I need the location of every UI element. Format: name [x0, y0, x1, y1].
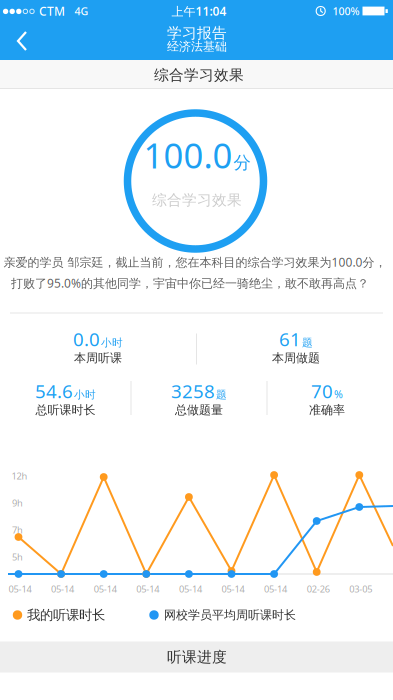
staticText: CTM	[39, 3, 65, 19]
staticText: 打败了95.0%的其他同学，宇宙中你已经一骑绝尘，敢不敢再高点？	[11, 275, 369, 291]
staticText: 5h	[12, 551, 23, 563]
staticText: 9h	[12, 497, 23, 509]
staticText: 分	[233, 152, 250, 173]
staticText: 题	[216, 388, 227, 401]
staticText: 05-14	[264, 583, 287, 595]
staticText: 小时	[101, 336, 123, 349]
staticText: 54.6	[35, 379, 73, 403]
staticText: 经济法基础	[167, 39, 227, 54]
staticText: 学习报告	[167, 24, 227, 42]
staticText: 我的听课时长	[27, 607, 105, 623]
staticText: 05-14	[136, 583, 159, 595]
staticText: 听课进度	[167, 648, 227, 666]
staticText: 05-14	[51, 583, 74, 595]
staticText: 70	[311, 379, 333, 403]
staticText: 100%	[332, 4, 359, 18]
staticText: 02-26	[307, 583, 330, 595]
staticText: 12h	[11, 470, 27, 482]
staticText: 7h	[12, 524, 23, 536]
staticText: %	[334, 387, 343, 401]
staticText: 综合学习效果	[152, 191, 242, 209]
staticText: 总听课时长	[35, 403, 95, 417]
staticText: 综合学习效果	[154, 66, 244, 84]
staticText: 05-14	[8, 583, 31, 595]
staticText: 4G	[74, 4, 88, 18]
staticText: 3258	[171, 379, 215, 403]
staticText: 题	[302, 336, 313, 349]
button[interactable]: 返回	[0, 22, 44, 60]
staticText: 05-14	[179, 583, 202, 595]
staticText: 小时	[74, 388, 96, 401]
staticText: 准确率	[309, 403, 345, 417]
staticText: 05-14	[94, 583, 117, 595]
staticText: 100.0	[143, 132, 232, 178]
staticText: 上午11:04	[171, 3, 226, 19]
staticText: 61	[279, 327, 301, 351]
staticText: 0.0	[73, 327, 100, 351]
staticText: 网校学员平均周听课时长	[164, 608, 296, 622]
staticText: 03-05	[349, 583, 372, 595]
staticText: 亲爱的学员 邹宗廷，截止当前，您在本科目的综合学习效果为100.0分，	[3, 254, 386, 270]
staticText: 05-14	[221, 583, 244, 595]
staticText: 本周做题	[272, 351, 320, 365]
staticText: 总做题量	[175, 403, 223, 417]
staticText: 本周听课	[74, 351, 122, 365]
